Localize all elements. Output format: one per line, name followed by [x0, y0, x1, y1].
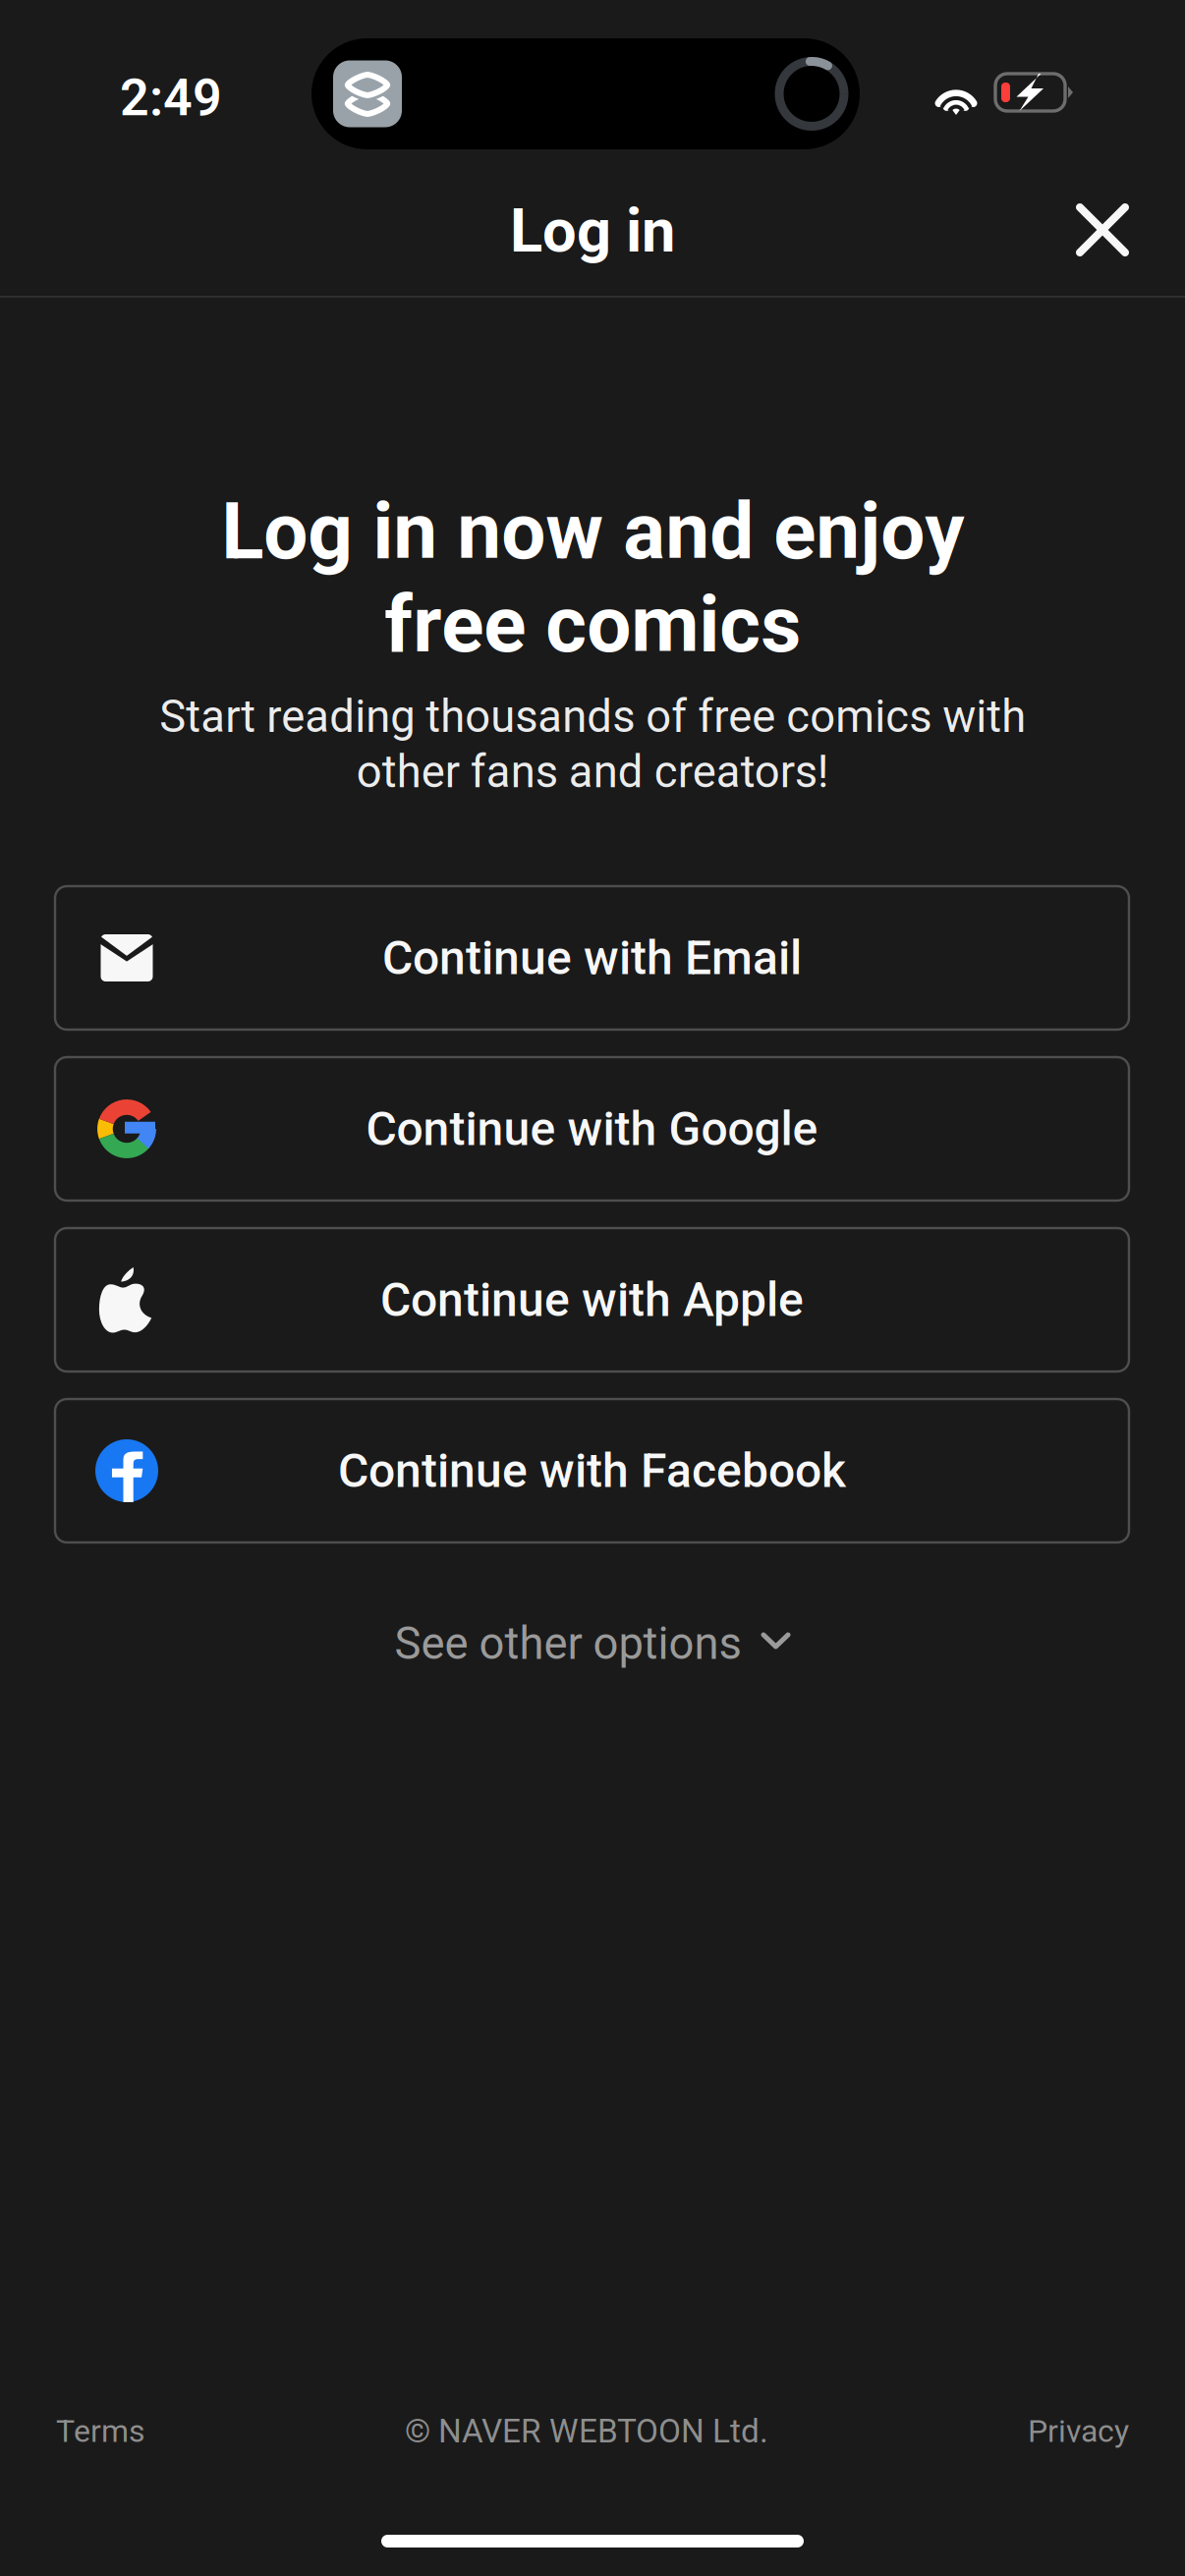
- button[interactable]: Continue with Apple: [55, 1228, 1129, 1372]
- staticText: Start reading thousands of free comics w…: [159, 691, 1026, 798]
- button[interactable]: Close: [1053, 181, 1152, 279]
- button[interactable]: Continue with Facebook: [55, 1399, 1129, 1542]
- button[interactable]: See other options: [0, 1604, 1185, 1683]
- button[interactable]: Continue with Google: [55, 1057, 1129, 1201]
- staticText: 2:49: [120, 68, 222, 128]
- button[interactable]: Terms: [56, 2413, 145, 2450]
- staticText: Continue with Email: [382, 930, 802, 986]
- staticText: Continue with Apple: [380, 1272, 804, 1327]
- staticText: Log in now and enjoy free comics: [221, 485, 964, 671]
- button[interactable]: Continue with Email: [55, 886, 1129, 1030]
- staticText: Continue with Google: [366, 1101, 818, 1156]
- staticText: See other options: [395, 1618, 741, 1670]
- staticText: Terms: [56, 2413, 145, 2450]
- staticText: © NAVER WEBTOON Ltd.: [405, 2412, 768, 2450]
- staticText: Log in: [510, 196, 675, 266]
- staticText: Privacy: [1028, 2413, 1129, 2450]
- staticText: Continue with Facebook: [338, 1443, 846, 1498]
- button[interactable]: Privacy: [1028, 2413, 1129, 2450]
